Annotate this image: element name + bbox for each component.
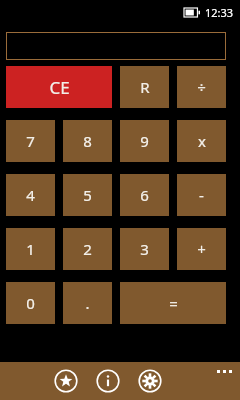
button[interactable]: 8 — [63, 120, 112, 162]
button[interactable]: . — [63, 282, 112, 324]
button[interactable]: About — [93, 366, 123, 396]
button[interactable]: ÷ — [177, 66, 226, 108]
button[interactable]: 3 — [120, 228, 169, 270]
staticText: 7 — [26, 131, 35, 151]
button[interactable]: = — [120, 282, 226, 324]
button[interactable]: + — [177, 228, 226, 270]
staticText: 3 — [140, 239, 149, 259]
button[interactable]: Settings — [135, 366, 165, 396]
staticText: 12:33 — [205, 5, 234, 20]
button[interactable]: More options — [217, 370, 232, 373]
button[interactable]: 5 — [63, 174, 112, 216]
button[interactable]: 2 — [63, 228, 112, 270]
staticText: 6 — [140, 185, 149, 205]
button[interactable] — [6, 32, 226, 60]
staticText: 0 — [26, 293, 35, 313]
staticText: ÷ — [197, 77, 206, 97]
button[interactable]: x — [177, 120, 226, 162]
staticText: R — [140, 77, 150, 97]
staticText: 4 — [26, 185, 35, 205]
staticText: 8 — [83, 131, 92, 151]
staticText: x — [198, 131, 206, 151]
button[interactable]: 0 — [6, 282, 55, 324]
button[interactable]: 6 — [120, 174, 169, 216]
staticText: = — [169, 293, 178, 313]
button[interactable]: R — [120, 66, 169, 108]
button[interactable]: 4 — [6, 174, 55, 216]
staticText: + — [197, 239, 206, 259]
staticText: 9 — [140, 131, 149, 151]
button[interactable]: CE — [6, 66, 112, 108]
button[interactable]: 9 — [120, 120, 169, 162]
staticText: - — [199, 185, 204, 205]
staticText: . — [85, 293, 90, 313]
button[interactable]: 1 — [6, 228, 55, 270]
staticText: CE — [49, 76, 70, 99]
staticText: 1 — [26, 239, 35, 259]
staticText: 5 — [83, 185, 92, 205]
button[interactable]: - — [177, 174, 226, 216]
button[interactable]: Favorites — [51, 366, 81, 396]
staticText: 2 — [83, 239, 92, 259]
button[interactable]: 7 — [6, 120, 55, 162]
